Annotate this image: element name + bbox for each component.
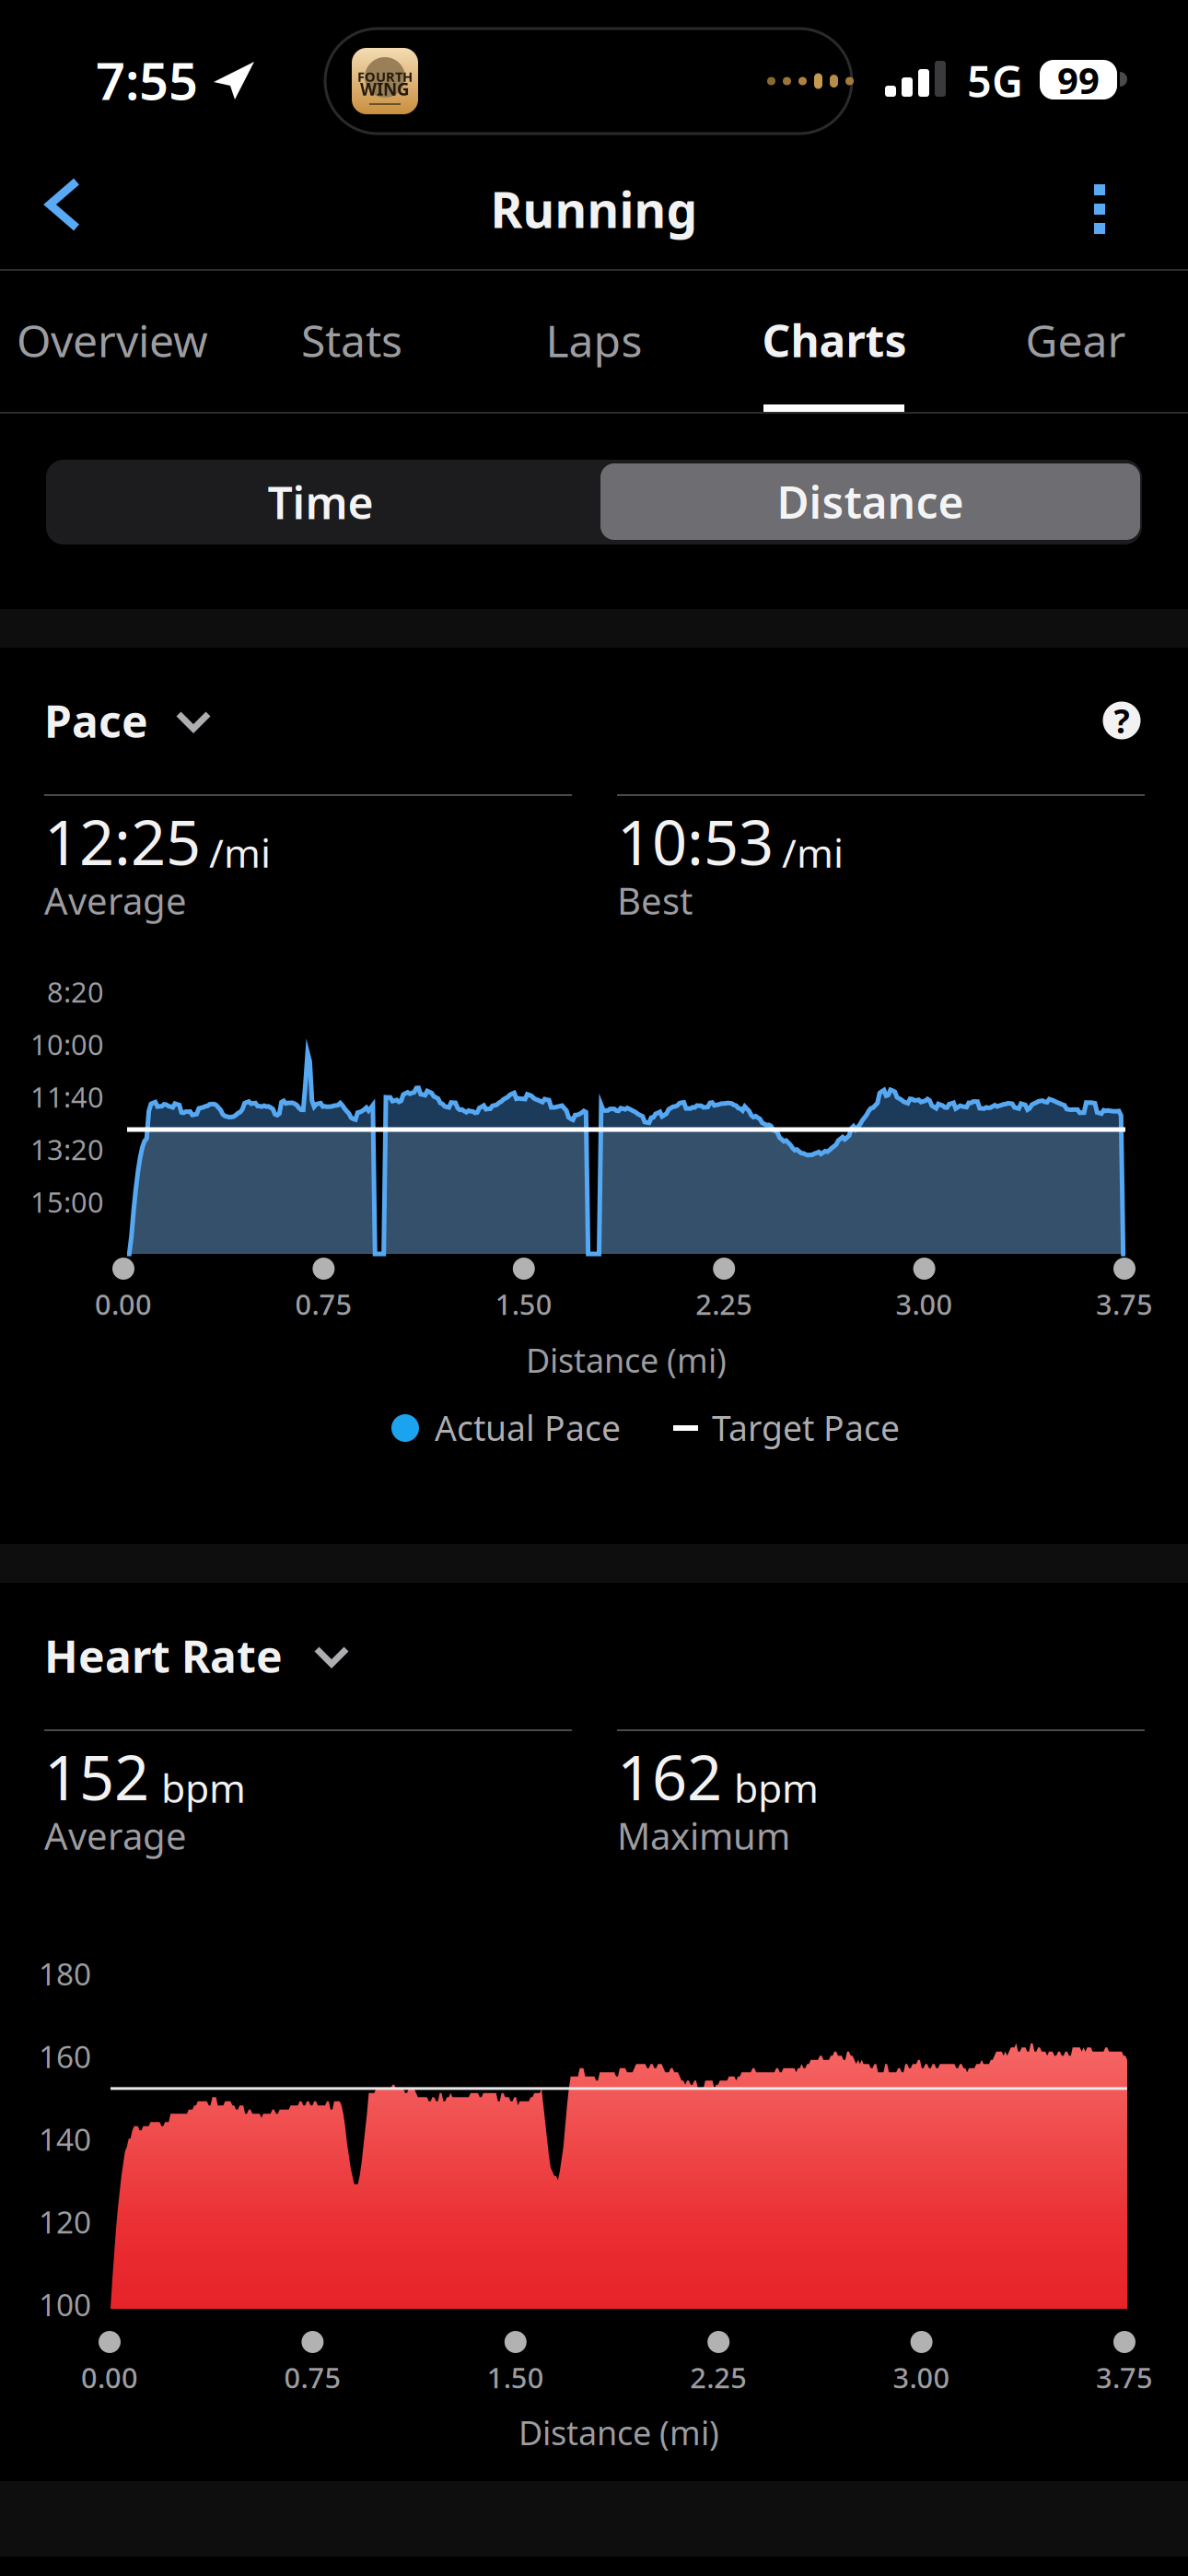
staticText: 152 bbox=[44, 1736, 149, 1817]
staticText: 13:20 bbox=[30, 1130, 104, 1168]
button[interactable]: Time bbox=[46, 460, 595, 544]
staticText: Stats bbox=[301, 311, 402, 369]
staticText: Pace bbox=[44, 691, 148, 750]
staticText: FOURTH bbox=[357, 68, 413, 85]
staticText: Charts bbox=[762, 311, 907, 369]
staticText: 100 bbox=[39, 2284, 91, 2325]
staticText: 180 bbox=[39, 1953, 91, 1994]
staticText: 3.75 bbox=[1096, 2358, 1153, 2396]
staticText: Running bbox=[490, 176, 698, 242]
button[interactable]: Pace bbox=[44, 682, 223, 761]
staticText: Actual Pace bbox=[435, 1405, 621, 1450]
button[interactable]: More options bbox=[1048, 143, 1151, 275]
staticText: 2.25 bbox=[695, 1285, 753, 1323]
staticText: Gear bbox=[1025, 311, 1126, 369]
staticText: 120 bbox=[39, 2201, 91, 2242]
staticText: Average bbox=[44, 876, 187, 925]
staticText: Distance bbox=[777, 472, 964, 531]
staticText: 140 bbox=[39, 2119, 91, 2159]
button[interactable]: Stats bbox=[232, 272, 472, 412]
staticText: 160 bbox=[39, 2036, 91, 2077]
staticText: ? bbox=[1114, 698, 1130, 742]
staticText: 3.00 bbox=[893, 2358, 950, 2396]
staticText: 12:25 bbox=[44, 801, 201, 882]
staticText: /mi bbox=[209, 826, 271, 879]
staticText: 1.50 bbox=[487, 2358, 544, 2396]
button[interactable]: Heart Rate bbox=[44, 1617, 361, 1696]
staticText: Distance (mi) bbox=[526, 1338, 727, 1382]
staticText: 0.00 bbox=[81, 2358, 138, 2396]
staticText: 99 bbox=[1057, 55, 1100, 104]
staticText: 5G bbox=[967, 52, 1023, 109]
staticText: /mi bbox=[782, 826, 844, 879]
button[interactable]: Back bbox=[13, 140, 117, 273]
staticText: Best bbox=[617, 876, 693, 925]
staticText: Overview bbox=[17, 311, 208, 369]
button[interactable]: Gear bbox=[956, 272, 1188, 412]
staticText: 3.75 bbox=[1096, 1285, 1153, 1323]
staticText: Average bbox=[44, 1811, 187, 1860]
staticText: 7:55 bbox=[96, 46, 198, 114]
staticText: 162 bbox=[617, 1736, 722, 1817]
staticText: Distance (mi) bbox=[518, 2410, 719, 2454]
staticText: 0.75 bbox=[284, 2358, 341, 2396]
staticText: 2.25 bbox=[690, 2358, 747, 2396]
staticText: 10:00 bbox=[30, 1025, 104, 1063]
staticText: 1.50 bbox=[495, 1285, 552, 1323]
staticText: 0.75 bbox=[295, 1285, 352, 1323]
button[interactable]: Help bbox=[1085, 684, 1159, 757]
staticText: 0.00 bbox=[95, 1285, 152, 1323]
button[interactable]: Laps bbox=[474, 272, 714, 412]
staticText: 11:40 bbox=[30, 1078, 104, 1115]
staticText: Maximum bbox=[617, 1811, 790, 1860]
button[interactable]: Charts bbox=[715, 272, 954, 412]
button[interactable]: Overview bbox=[0, 272, 232, 412]
staticText: 3.00 bbox=[896, 1285, 953, 1323]
staticText: Time bbox=[268, 473, 373, 531]
staticText: WING bbox=[360, 77, 410, 100]
staticText: 8:20 bbox=[47, 973, 104, 1010]
staticText: bpm bbox=[161, 1761, 246, 1814]
staticText: Laps bbox=[546, 311, 642, 369]
staticText: bpm bbox=[734, 1761, 819, 1814]
staticText: 10:53 bbox=[617, 801, 774, 882]
staticText: 15:00 bbox=[30, 1183, 104, 1220]
staticText: Target Pace bbox=[712, 1405, 900, 1450]
staticText: Heart Rate bbox=[44, 1626, 283, 1685]
button[interactable]: Distance bbox=[600, 463, 1140, 540]
